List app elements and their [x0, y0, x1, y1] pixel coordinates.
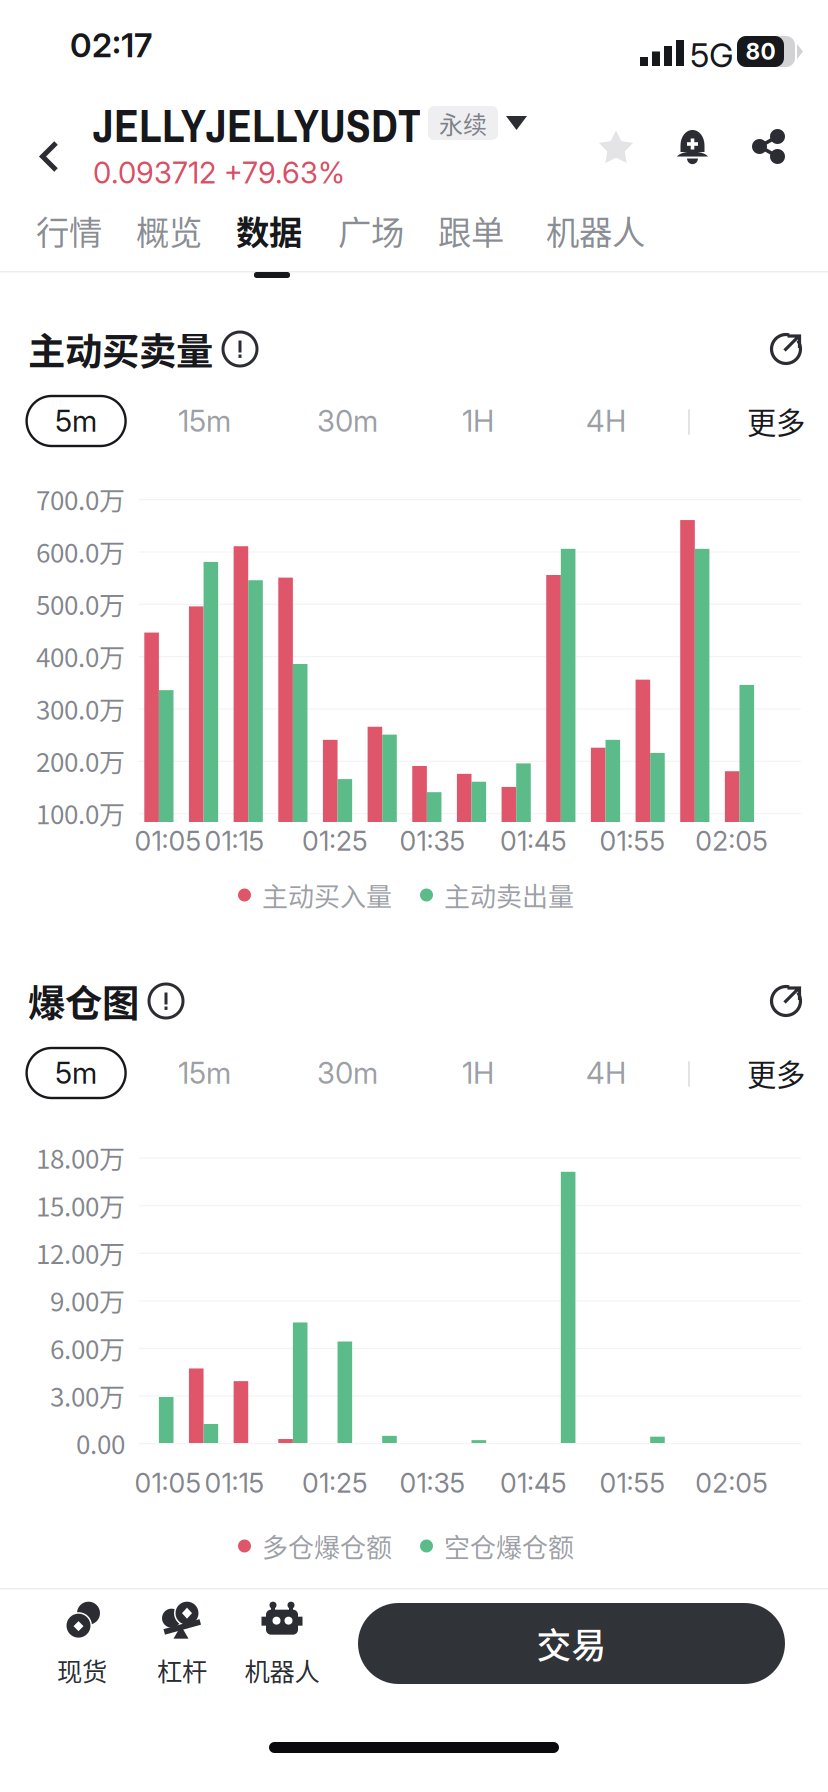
button[interactable]: About 主动买卖量 — [213, 326, 263, 372]
staticText: 01:45 — [500, 825, 567, 857]
staticText: 01:15 — [204, 825, 264, 857]
staticText: 0.093712 +79.63% — [93, 155, 345, 190]
staticText: 01:05 — [134, 825, 201, 857]
staticText: 600.0万 — [36, 532, 125, 570]
button[interactable]: Back — [25, 127, 73, 186]
staticText: 杠杆 — [157, 1652, 207, 1688]
staticText: 跟单 — [438, 206, 504, 254]
staticText: 数据 — [236, 206, 302, 254]
button[interactable]: Add to favourites — [586, 118, 646, 176]
button[interactable]: 5m — [27, 396, 126, 446]
staticText: 机器人 — [244, 1652, 319, 1688]
button[interactable]: 更多 — [747, 396, 825, 446]
staticText: 交易 — [536, 1618, 606, 1669]
staticText: 1H — [462, 403, 494, 439]
staticText: 广场 — [338, 206, 404, 254]
staticText: 4H — [586, 403, 626, 439]
staticText: 400.0万 — [36, 637, 125, 675]
staticText: 机器人 — [546, 206, 645, 254]
staticText: 01:35 — [400, 825, 466, 857]
staticText: 空仓爆仓额 — [444, 1527, 574, 1565]
button[interactable]: 4H — [566, 396, 646, 446]
button[interactable]: Open chart full screen — [760, 323, 812, 375]
button[interactable]: 行情 — [22, 193, 116, 267]
staticText: 12.00万 — [36, 1234, 125, 1271]
staticText: 更多 — [747, 1052, 805, 1094]
button[interactable]: 交易 — [358, 1603, 785, 1684]
button[interactable]: 4H — [566, 1048, 646, 1098]
staticText: 9.00万 — [50, 1281, 125, 1319]
staticText: 永续 — [439, 106, 487, 140]
staticText: 3.00万 — [50, 1377, 125, 1414]
staticText: 4H — [586, 1055, 626, 1091]
staticText: 01:05 — [134, 1467, 201, 1499]
staticText: 100.0万 — [36, 794, 125, 832]
button[interactable]: 1H — [442, 396, 514, 446]
staticText: 0.00 — [76, 1424, 125, 1462]
staticText: 700.0万 — [36, 480, 125, 518]
staticText: 主动买入量 — [262, 876, 392, 914]
button[interactable]: Price alert — [665, 118, 720, 177]
button[interactable]: 机器人 — [232, 1598, 332, 1690]
button[interactable]: About 爆仓图 — [139, 978, 189, 1024]
staticText: 30m — [317, 403, 378, 439]
button[interactable]: 广场 — [324, 193, 418, 267]
staticText: 爆仓图 — [28, 974, 139, 1028]
staticText: 主动买卖量 — [28, 322, 213, 376]
staticText: 01:45 — [500, 1467, 567, 1499]
button[interactable]: 30m — [297, 396, 398, 446]
staticText: 多仓爆仓额 — [262, 1527, 392, 1565]
staticText: 15.00万 — [36, 1186, 125, 1224]
staticText: 01:35 — [400, 1467, 466, 1499]
button[interactable]: 30m — [297, 1048, 398, 1098]
button[interactable]: Share — [740, 117, 797, 176]
staticText: 500.0万 — [36, 585, 125, 622]
button[interactable]: Contract type: perpetual — [428, 106, 527, 140]
staticText: 1H — [462, 1055, 494, 1091]
staticText: 现货 — [57, 1652, 107, 1688]
button[interactable]: 现货 — [32, 1598, 132, 1690]
staticText: 01:25 — [302, 1467, 368, 1499]
staticText: 80 — [745, 38, 775, 65]
button[interactable]: 概览 — [122, 193, 216, 267]
button[interactable]: 机器人 — [532, 193, 659, 267]
button[interactable]: 跟单 — [424, 193, 518, 267]
staticText: 6.00万 — [50, 1329, 125, 1367]
staticText: 300.0万 — [36, 689, 125, 727]
button[interactable]: 15m — [158, 396, 251, 446]
staticText: 02:05 — [695, 825, 768, 857]
staticText: 01:25 — [302, 825, 368, 857]
button[interactable]: 杠杆 — [132, 1598, 232, 1690]
staticText: 02:17 — [70, 25, 152, 65]
staticText: 5m — [55, 403, 97, 439]
staticText: 5G — [690, 35, 734, 75]
button[interactable]: 1H — [442, 1048, 514, 1098]
staticText: 概览 — [136, 206, 202, 254]
staticText: 更多 — [747, 400, 805, 442]
button[interactable]: 5m — [27, 1048, 126, 1098]
staticText: 01:55 — [599, 825, 665, 857]
staticText: 01:55 — [599, 1467, 665, 1499]
staticText: 15m — [178, 403, 231, 439]
staticText: 30m — [317, 1055, 378, 1091]
staticText: 5m — [55, 1055, 97, 1091]
staticText: JELLYJELLYUSDT — [93, 95, 421, 156]
button[interactable]: 更多 — [747, 1048, 825, 1098]
staticText: 行情 — [36, 206, 102, 254]
staticText: 02:05 — [695, 1467, 768, 1499]
button[interactable]: 15m — [158, 1048, 251, 1098]
staticText: 15m — [178, 1055, 231, 1091]
staticText: 主动卖出量 — [444, 876, 574, 914]
button[interactable]: Open chart full screen — [760, 975, 812, 1027]
staticText: 01:15 — [204, 1467, 264, 1499]
button[interactable]: 数据 — [222, 193, 316, 267]
staticText: 18.00万 — [36, 1139, 125, 1176]
staticText: 200.0万 — [36, 742, 125, 779]
